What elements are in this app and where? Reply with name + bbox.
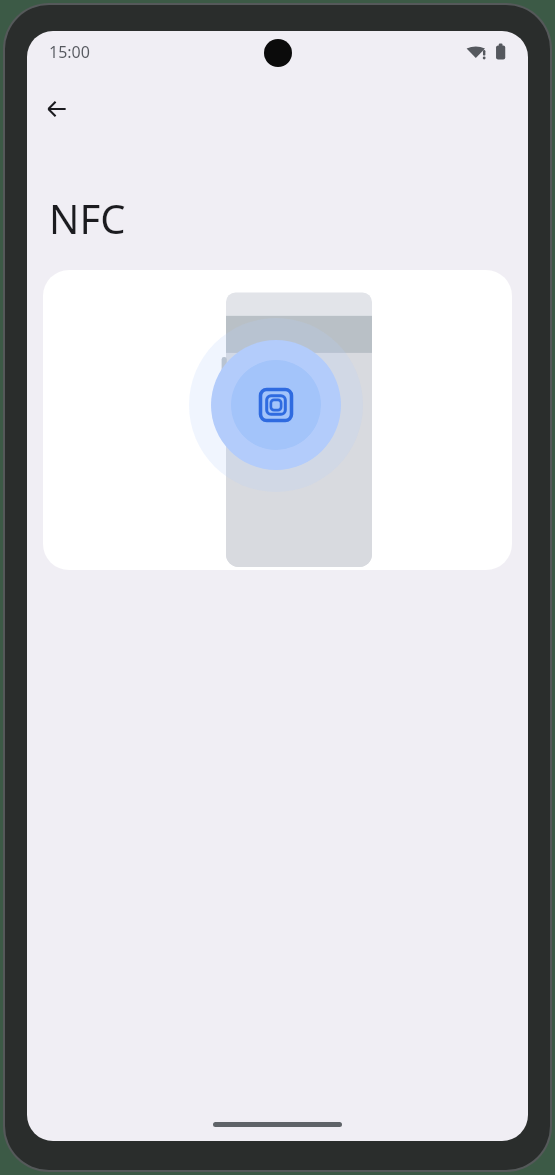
staticText: 15:00: [49, 41, 90, 63]
button[interactable]: [43, 270, 512, 570]
staticText: NFC: [49, 191, 126, 245]
button[interactable]: Back: [33, 85, 81, 133]
